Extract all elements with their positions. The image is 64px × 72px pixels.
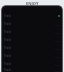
staticText: 3:20	[55, 47, 60, 50]
button[interactable]: Track	[2, 20, 62, 28]
staticText: 3:20	[55, 39, 60, 42]
staticText: ENJOY	[26, 1, 39, 6]
staticText: Track	[4, 62, 12, 66]
button[interactable]: Track	[2, 60, 62, 68]
staticText: 3:20	[55, 55, 60, 58]
button[interactable]: Track	[2, 52, 62, 60]
staticText: Track	[4, 54, 12, 58]
staticText: 3:20	[55, 63, 60, 66]
staticText: 3:20	[55, 31, 60, 34]
staticText: Track	[4, 46, 12, 50]
button[interactable]: Track	[2, 44, 62, 52]
button[interactable]: Track	[2, 68, 62, 72]
staticText: Track	[4, 38, 12, 42]
button[interactable]: Track	[2, 12, 62, 20]
button[interactable]: Track	[2, 28, 62, 36]
staticText: Track	[4, 22, 12, 26]
staticText: Track	[4, 14, 12, 18]
staticText: Track	[4, 30, 12, 34]
staticText: 3:20	[55, 23, 60, 26]
staticText: 3:20	[55, 69, 60, 72]
button[interactable]: Track	[2, 36, 62, 44]
staticText: Track	[4, 68, 12, 72]
